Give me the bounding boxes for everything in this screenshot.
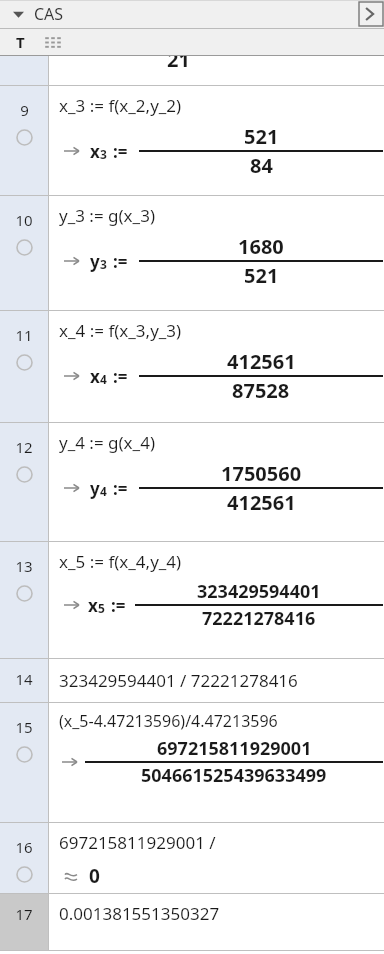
- staticText: :=: [113, 250, 128, 273]
- staticText: 521: [244, 123, 279, 150]
- button[interactable]: 13: [0, 542, 48, 658]
- button[interactable]: 15: [0, 703, 48, 822]
- button[interactable]: 9: [0, 86, 48, 195]
- staticText: 11: [15, 325, 33, 345]
- staticText: :=: [113, 477, 128, 500]
- staticText: 5: [98, 600, 105, 616]
- button[interactable]: 323429594401 / 72221278416: [49, 659, 384, 702]
- button[interactable]: x_3 := f(x_2,y_2): [49, 86, 384, 195]
- staticText: y_3 := g(x_3): [59, 204, 155, 227]
- button[interactable]: Collapse CAS: [8, 4, 28, 24]
- staticText: 697215811929001 / 504661525439633499: [59, 831, 384, 854]
- staticText: x: [90, 365, 100, 388]
- staticText: :=: [113, 140, 128, 163]
- staticText: 14: [15, 669, 33, 689]
- staticText: x_5 := f(x_4,y_4): [59, 550, 182, 573]
- button[interactable]: Keypad: [42, 33, 64, 51]
- staticText: x_3 := f(x_2,y_2): [59, 94, 182, 117]
- button[interactable]: x_4 := f(x_3,y_3): [49, 311, 384, 422]
- button[interactable]: (x_5-4.47213596)/4.47213596: [49, 703, 384, 822]
- staticText: x_4 := f(x_3,y_3): [59, 319, 182, 342]
- button[interactable]: 0.001381551350327: [49, 894, 384, 950]
- staticText: 16: [15, 837, 33, 857]
- staticText: 15: [15, 717, 33, 737]
- staticText: x: [88, 594, 98, 617]
- staticText: 412561: [227, 348, 296, 375]
- staticText: 323429594401: [197, 579, 321, 604]
- button[interactable]: 697215811929001 / 504661525439633499: [49, 823, 384, 893]
- button[interactable]: 16: [0, 823, 48, 893]
- staticText: (x_5-4.47213596)/4.47213596: [59, 710, 278, 732]
- staticText: y_4 := g(x_4): [59, 431, 155, 454]
- staticText: CAS: [34, 3, 64, 25]
- staticText: 9: [20, 100, 29, 120]
- staticText: 3: [100, 146, 107, 162]
- staticText: 4: [100, 371, 107, 387]
- staticText: 504661525439633499: [141, 763, 327, 788]
- staticText: 697215811929001: [157, 736, 312, 761]
- staticText: 17: [15, 904, 33, 924]
- staticText: 72221278416: [202, 606, 316, 631]
- staticText: 84: [250, 152, 273, 179]
- staticText: :=: [113, 365, 128, 388]
- staticText: :=: [111, 594, 126, 617]
- staticText: 10: [15, 210, 33, 230]
- button[interactable]: y_3 := g(x_3): [49, 196, 384, 310]
- button[interactable]: Text tool: [10, 32, 30, 52]
- button[interactable]: Expand panel: [359, 2, 383, 26]
- staticText: 323429594401 / 72221278416: [59, 669, 298, 692]
- staticText: 412561: [227, 489, 296, 516]
- button[interactable]: 12: [0, 423, 48, 541]
- button[interactable]: y_4 := g(x_4): [49, 423, 384, 541]
- staticText: 4: [100, 483, 107, 499]
- button[interactable]: x_5 := f(x_4,y_4): [49, 542, 384, 658]
- button[interactable]: 10: [0, 196, 48, 310]
- staticText: 21: [167, 56, 190, 73]
- staticText: 0.001381551350327: [59, 902, 220, 925]
- button[interactable]: 14: [0, 659, 48, 702]
- button[interactable]: 17: [0, 894, 48, 950]
- staticText: 1750560: [221, 460, 302, 487]
- staticText: 12: [15, 437, 33, 457]
- staticText: T: [16, 32, 25, 52]
- staticText: 13: [15, 556, 33, 576]
- staticText: 0: [89, 863, 100, 889]
- button[interactable]: 11: [0, 311, 48, 422]
- staticText: 87528: [232, 377, 290, 404]
- staticText: y: [90, 477, 100, 500]
- staticText: 521: [244, 262, 279, 289]
- staticText: 1680: [238, 233, 284, 260]
- staticText: 3: [100, 256, 107, 272]
- staticText: y: [90, 250, 100, 273]
- staticText: x: [90, 140, 100, 163]
